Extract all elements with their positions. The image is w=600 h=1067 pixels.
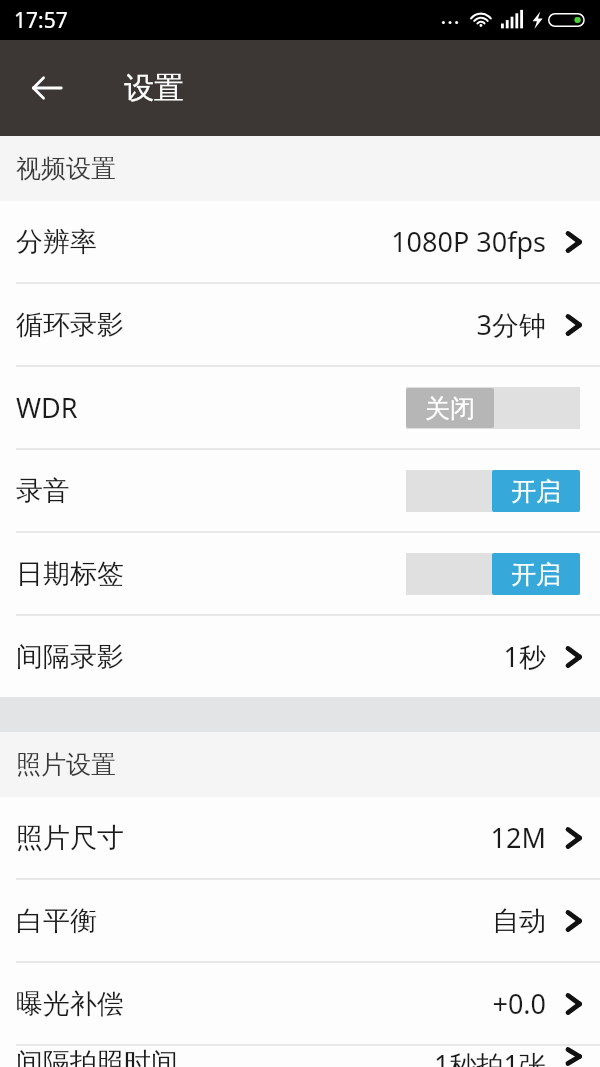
staticText: 照片设置 [16, 749, 116, 780]
button[interactable]: 开启 [406, 553, 580, 595]
staticText: 1秒 [503, 638, 546, 675]
button[interactable]: 间隔录影 [0, 616, 600, 697]
staticText: WDR [16, 389, 78, 426]
staticText: 开启 [511, 476, 561, 507]
staticText: 间隔录影 [16, 640, 124, 674]
staticText: 循环录影 [16, 308, 124, 342]
staticText: 设置 [124, 69, 184, 107]
button[interactable]: 循环录影 [0, 284, 600, 365]
staticText: 1秒拍1张 [434, 1046, 546, 1067]
staticText: 白平衡 [16, 904, 97, 938]
button[interactable]: 白平衡 [0, 880, 600, 961]
button[interactable]: Back [16, 57, 78, 119]
staticText: 3分钟 [476, 306, 546, 343]
staticText: 日期标签 [16, 557, 124, 591]
staticText: 1080P 30fps [391, 223, 546, 260]
staticText: 视频设置 [16, 153, 116, 184]
staticText: 12M [490, 819, 546, 856]
staticText: 分辨率 [16, 225, 97, 259]
staticText: 曝光补偿 [16, 987, 124, 1021]
staticText: 录音 [16, 474, 70, 508]
button[interactable]: 间隔拍照时间 [0, 1046, 600, 1067]
button[interactable]: 分辨率 [0, 201, 600, 282]
button[interactable]: 曝光补偿 [0, 963, 600, 1044]
staticText: 开启 [511, 559, 561, 590]
button[interactable]: 照片尺寸 [0, 797, 600, 878]
staticText: 间隔拍照时间 [16, 1046, 178, 1067]
staticText: +0.0 [492, 985, 546, 1022]
staticText: 关闭 [425, 393, 475, 424]
staticText: 17:57 [14, 6, 68, 35]
staticText: 照片尺寸 [16, 821, 124, 855]
button[interactable]: 关闭 [406, 387, 580, 429]
staticText: 自动 [492, 904, 546, 938]
button[interactable]: 开启 [406, 470, 580, 512]
